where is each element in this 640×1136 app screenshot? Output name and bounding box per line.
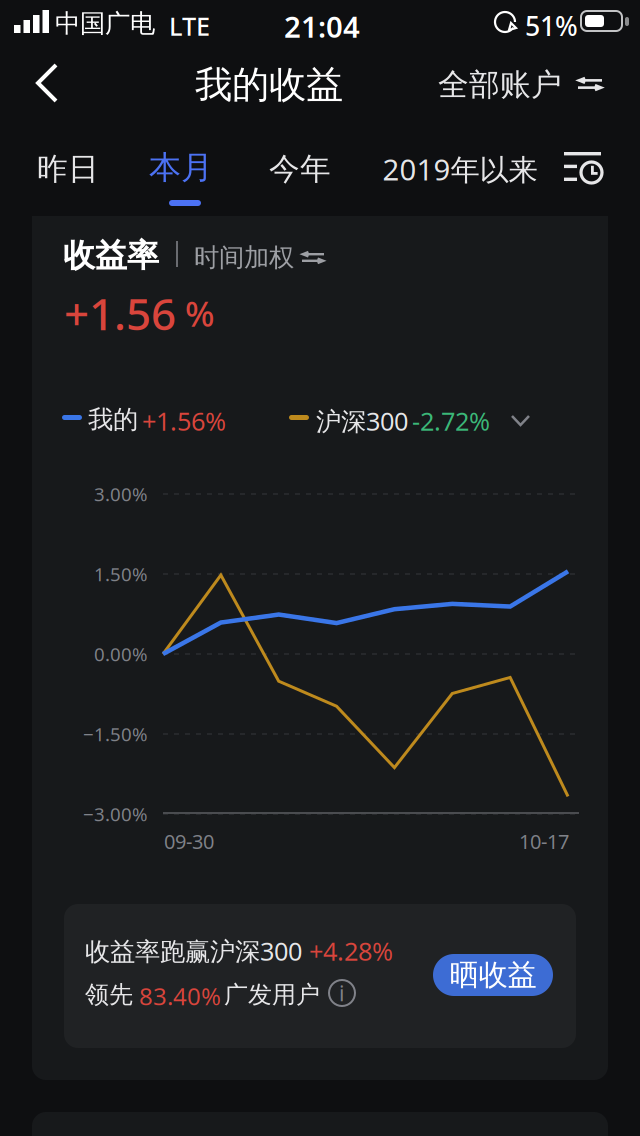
staticText: 沪深300 [316, 404, 408, 438]
staticText: 今年 [269, 150, 331, 188]
staticText: 09-30 [164, 828, 214, 855]
staticText: 时间加权 [194, 242, 294, 273]
staticText: 1.50% [94, 562, 148, 586]
staticText: 我的收益 [195, 62, 343, 108]
staticText: +4.28% [302, 934, 393, 968]
staticText: 本月 [149, 148, 213, 187]
staticText: % [176, 290, 215, 336]
button[interactable]: 本月 [140, 140, 230, 214]
staticText: 收益率 [63, 236, 159, 275]
staticText: 广发用户 [224, 980, 320, 1009]
button[interactable]: 2019年以来 [375, 142, 545, 196]
staticText: 昨日 [37, 150, 99, 188]
staticText: 全部账户 [438, 66, 562, 104]
staticText: 2019年以来 [382, 149, 537, 188]
staticText: 51% [525, 8, 578, 43]
staticText: 领先 [85, 980, 133, 1009]
button[interactable]: History [556, 142, 612, 194]
staticText: -2.72% [412, 404, 490, 438]
staticText: 3.00% [94, 482, 148, 506]
button[interactable]: More [500, 400, 544, 442]
staticText: 0.00% [94, 642, 148, 666]
staticText: 10-17 [519, 828, 569, 855]
staticText: 晒收益 [449, 957, 536, 993]
button[interactable]: Info [324, 975, 360, 1011]
button[interactable]: 全部账户 [430, 58, 620, 112]
staticText: +1.56 [64, 284, 176, 342]
button[interactable]: 时间加权 [190, 234, 350, 278]
button[interactable]: 昨日 [28, 142, 108, 196]
button[interactable]: 晒收益 [433, 954, 553, 996]
button[interactable]: 今年 [260, 142, 340, 196]
staticText: −3.00% [83, 802, 148, 826]
staticText: 中国广电 [55, 8, 155, 39]
staticText: i [339, 979, 345, 1007]
staticText: 83.40% [139, 980, 221, 1012]
staticText: 21:04 [284, 7, 360, 46]
button[interactable]: Back [14, 54, 78, 120]
staticText: LTE [169, 9, 210, 43]
staticText: +1.56% [142, 404, 226, 438]
staticText: 我的 [88, 404, 138, 435]
staticText: 收益率跑赢沪深300 [85, 934, 302, 968]
staticText: −1.50% [83, 722, 148, 746]
